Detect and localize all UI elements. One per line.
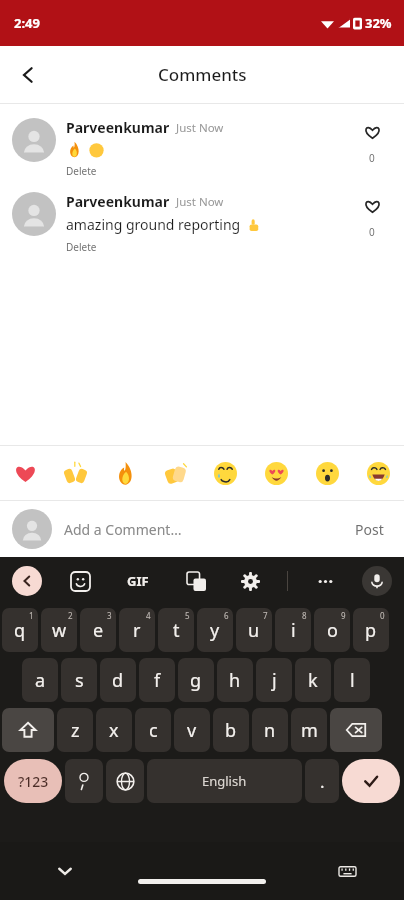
button[interactable]: Reaction 5 <box>200 446 251 500</box>
button[interactable]: Reaction 6 <box>251 446 302 500</box>
staticText: n <box>264 718 276 743</box>
button[interactable]: y <box>197 608 233 652</box>
button[interactable]: m <box>291 708 327 752</box>
button[interactable]: Settings <box>233 564 267 598</box>
button[interactable]: x <box>96 708 132 752</box>
staticText: r <box>133 618 141 643</box>
staticText: 5 <box>185 610 190 621</box>
button[interactable]: n <box>252 708 288 752</box>
staticText: w <box>52 618 67 643</box>
staticText: 32% <box>365 14 392 32</box>
button[interactable]: o <box>314 608 350 652</box>
button[interactable]: Change language <box>106 759 144 803</box>
button[interactable]: t <box>158 608 194 652</box>
staticText: d <box>112 668 124 693</box>
staticText: Add a Comment… <box>64 520 182 539</box>
button[interactable]: l <box>334 658 370 702</box>
button[interactable]: Reaction 4 <box>150 446 200 500</box>
button[interactable]: u <box>236 608 272 652</box>
button[interactable]: GIF <box>118 561 158 601</box>
staticText: k <box>308 668 318 693</box>
staticText: 7 <box>263 610 268 621</box>
button[interactable]: Reaction 7 <box>302 446 353 500</box>
staticText: u <box>248 618 260 643</box>
button[interactable]: a <box>22 658 58 702</box>
staticText: Parveenkumar <box>66 118 170 137</box>
button[interactable]: Stickers <box>63 564 97 598</box>
staticText: ?123 <box>18 772 49 791</box>
staticText: Just Now <box>176 194 224 210</box>
staticText: a <box>35 668 46 693</box>
button[interactable]: Hide keyboard <box>48 854 82 888</box>
button[interactable]: Translate <box>179 564 213 598</box>
button[interactable]: Voice input <box>362 566 392 596</box>
staticText: x <box>109 718 119 743</box>
staticText: m <box>301 718 318 743</box>
button[interactable]: . <box>305 759 339 803</box>
button[interactable]: ?123 <box>4 759 62 803</box>
button[interactable]: Switch keyboard <box>330 854 364 888</box>
button[interactable]: More options <box>308 564 342 598</box>
button[interactable]: Reaction 8 <box>353 446 404 500</box>
staticText: Post <box>355 520 384 539</box>
button[interactable]: w <box>41 608 77 652</box>
button[interactable]: k <box>295 658 331 702</box>
button[interactable]: Back <box>8 55 48 95</box>
button[interactable]: Parveenkumar <box>0 104 404 178</box>
button[interactable]: Shift <box>2 708 54 752</box>
staticText: o <box>327 618 338 643</box>
button[interactable]: h <box>217 658 253 702</box>
button[interactable]: c <box>135 708 171 752</box>
staticText: 6 <box>224 610 229 621</box>
staticText: y <box>210 618 220 643</box>
button[interactable]: Delete <box>66 240 97 254</box>
button[interactable]: Back <box>12 566 42 596</box>
staticText: Delete <box>66 164 97 178</box>
button[interactable]: Parveenkumar <box>0 178 404 254</box>
staticText: j <box>272 668 277 693</box>
staticText: t <box>173 618 180 643</box>
button[interactable]: Like <box>348 118 396 165</box>
staticText: b <box>225 718 237 743</box>
button[interactable]: e <box>80 608 116 652</box>
staticText: s <box>75 668 84 693</box>
staticText: 8 <box>302 610 307 621</box>
button[interactable]: Reaction 3 <box>100 446 150 500</box>
button[interactable]: r <box>119 608 155 652</box>
button[interactable]: b <box>213 708 249 752</box>
button[interactable]: z <box>57 708 93 752</box>
staticText: g <box>190 668 202 693</box>
button[interactable]: Add a Comment… <box>64 520 349 539</box>
button[interactable]: English <box>147 759 302 803</box>
button[interactable]: Like <box>348 192 396 239</box>
button[interactable]: Delete <box>66 164 97 178</box>
button[interactable]: v <box>174 708 210 752</box>
button[interactable]: i <box>275 608 311 652</box>
staticText: English <box>202 772 247 790</box>
button[interactable]: g <box>178 658 214 702</box>
staticText: . <box>320 770 325 793</box>
staticText: 0 <box>369 225 375 239</box>
button[interactable]: Reaction 1 <box>0 446 50 500</box>
button[interactable]: Reaction 2 <box>50 446 100 500</box>
button[interactable]: Backspace <box>330 708 382 752</box>
staticText: l <box>350 668 355 693</box>
staticText: v <box>187 718 197 743</box>
button[interactable]: s <box>61 658 97 702</box>
button[interactable]: Emoji and comma <box>65 759 103 803</box>
button[interactable]: j <box>256 658 292 702</box>
button[interactable]: d <box>100 658 136 702</box>
staticText: 9 <box>341 610 346 621</box>
button[interactable]: p <box>353 608 389 652</box>
staticText: amazing ground reporting <box>66 215 241 234</box>
button[interactable]: Enter <box>342 759 400 803</box>
staticText: Delete <box>66 240 97 254</box>
staticText: 2 <box>68 610 73 621</box>
button[interactable]: f <box>139 658 175 702</box>
staticText: c <box>149 718 158 743</box>
button[interactable]: Post <box>349 514 390 545</box>
button[interactable]: q <box>2 608 38 652</box>
staticText: GIF <box>127 572 149 590</box>
staticText: 0 <box>369 151 375 165</box>
staticText: z <box>71 718 80 743</box>
